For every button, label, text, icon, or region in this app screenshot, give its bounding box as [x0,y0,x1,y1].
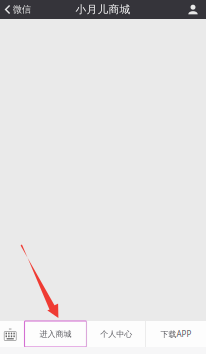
button[interactable]: 微信 [0,0,37,19]
staticText: 下载APP [160,329,191,339]
button[interactable]: 下载APP [146,321,206,347]
staticText: 小月儿商城 [75,3,130,16]
button[interactable]: Keyboard [0,321,24,347]
staticText: 进入商城 [39,329,71,339]
staticText: 微信 [13,4,31,15]
staticText: 个人中心 [100,329,132,339]
button[interactable]: 个人中心 [87,321,145,347]
button[interactable]: 进入商城 [24,321,86,347]
button[interactable]: Contact [188,0,206,19]
